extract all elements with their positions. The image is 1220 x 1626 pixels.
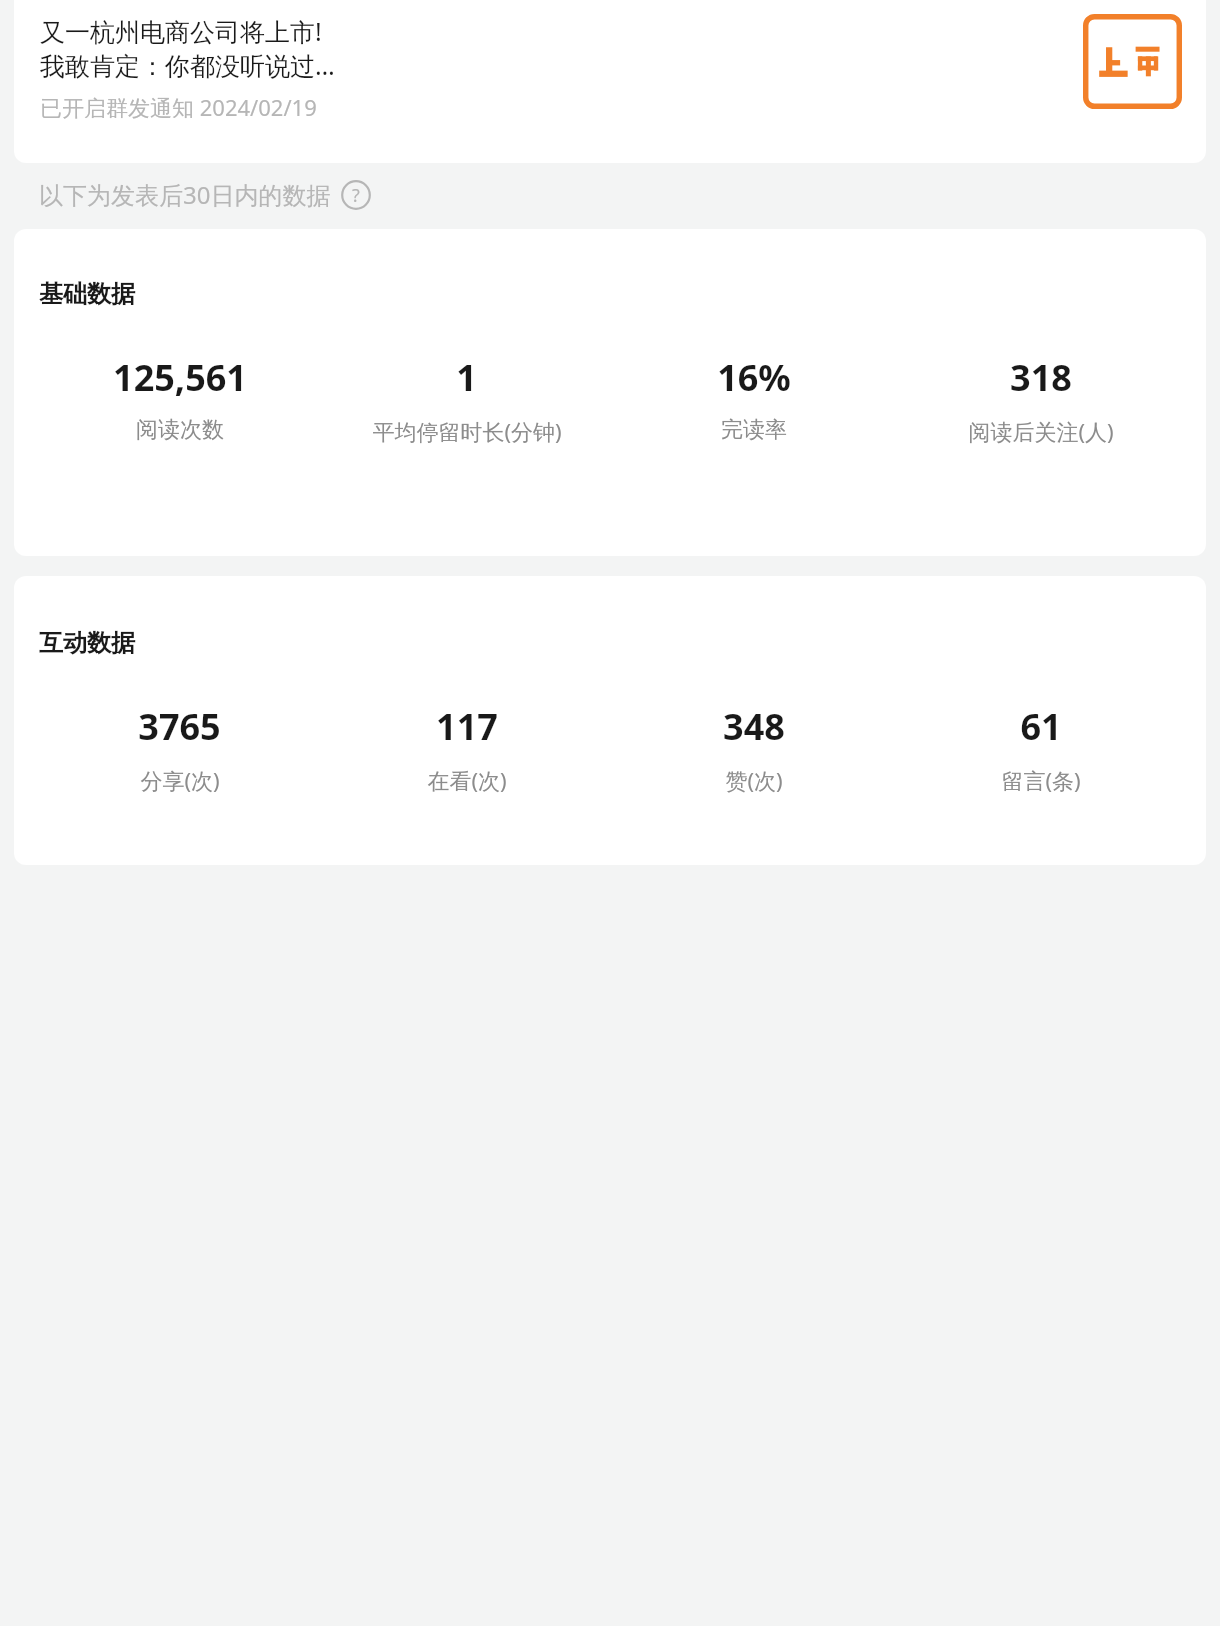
staticText: 117 xyxy=(436,702,498,751)
staticText: 平均停留时长(分钟) xyxy=(372,416,562,446)
button[interactable]: 互动数据 xyxy=(14,576,1206,865)
staticText: 已开启群发通知 2024/02/19 xyxy=(40,92,317,122)
staticText: 赞(次) xyxy=(725,765,783,795)
button[interactable]: 文章封面 xyxy=(1083,14,1182,109)
button[interactable]: 1 xyxy=(329,353,604,446)
button[interactable]: 117 xyxy=(329,702,604,795)
staticText: 318 xyxy=(1010,353,1072,402)
staticText: 基础数据 xyxy=(39,279,135,309)
staticText: 我敢肯定：你都没听说过… xyxy=(40,48,335,82)
button[interactable]: 说明 xyxy=(341,180,371,210)
staticText: 16% xyxy=(717,353,791,402)
staticText: 在看(次) xyxy=(427,765,507,795)
staticText: 留言(条) xyxy=(1001,765,1081,795)
staticText: 阅读后关注(人) xyxy=(968,416,1114,446)
staticText: 分享(次) xyxy=(140,765,220,795)
staticText: 又一杭州电商公司将上市! xyxy=(40,14,322,48)
button[interactable]: 61 xyxy=(903,702,1178,795)
button[interactable]: 318 xyxy=(903,353,1178,446)
staticText: 阅读次数 xyxy=(136,416,224,444)
staticText: 61 xyxy=(1020,702,1062,751)
button[interactable]: 16% xyxy=(616,353,891,444)
staticText: 互动数据 xyxy=(39,628,135,658)
staticText: 125,561 xyxy=(113,353,247,402)
button[interactable]: 125,561 xyxy=(42,353,317,444)
staticText: 3765 xyxy=(138,702,221,751)
staticText: 1 xyxy=(456,353,477,402)
staticText: 完读率 xyxy=(721,416,787,444)
button[interactable]: 348 xyxy=(616,702,891,795)
button[interactable]: 又一杭州电商公司将上市! xyxy=(14,0,1206,163)
staticText: 348 xyxy=(723,702,785,751)
staticText: ? xyxy=(352,183,360,208)
button[interactable]: 3765 xyxy=(42,702,317,795)
staticText: 以下为发表后30日内的数据 xyxy=(39,178,331,211)
button[interactable]: 基础数据 xyxy=(14,229,1206,556)
